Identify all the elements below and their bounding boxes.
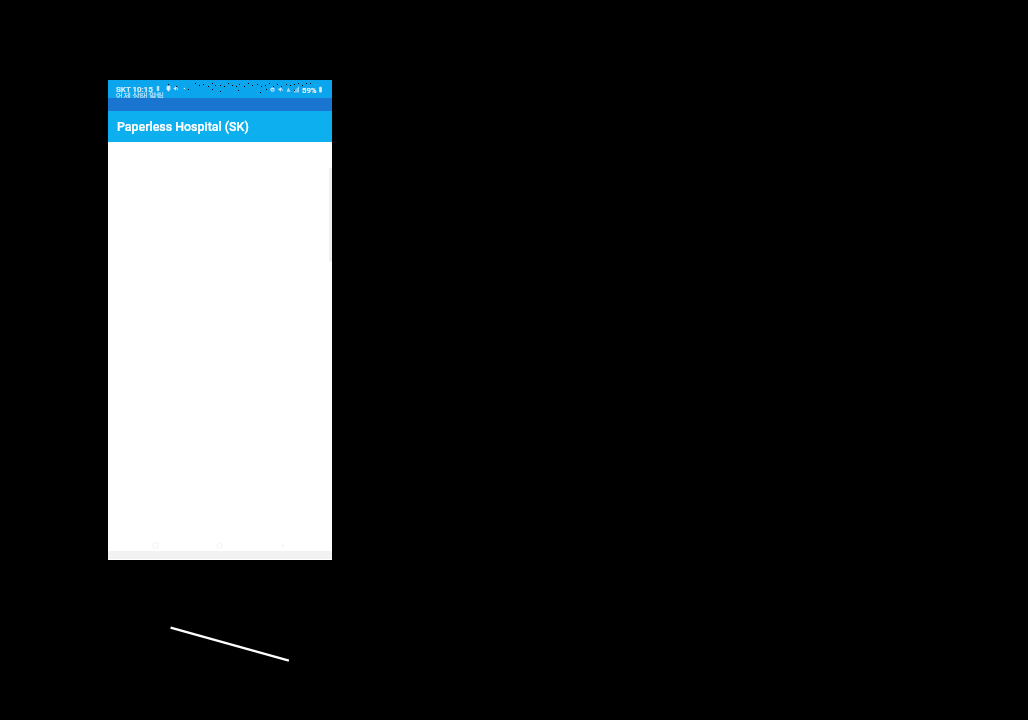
staticText: 59% [302, 86, 317, 95]
staticText: 어제 상태 알림 [116, 91, 165, 98]
button[interactable]: Paperless Hospital (SK) [108, 111, 332, 142]
staticText: Paperless Hospital (SK) [117, 119, 249, 134]
staticText: SKT 10:15 [116, 85, 153, 94]
button[interactable]: Home [216, 542, 223, 549]
